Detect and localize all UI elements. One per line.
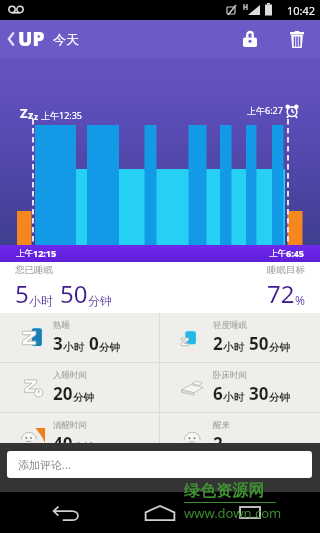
staticText: 上午12:35 [41,109,83,121]
staticText: % [295,292,305,308]
button[interactable]: UP 今天 [0,26,87,52]
staticText: 分钟 [73,391,94,404]
staticText: UP [18,26,45,52]
staticText: 上午6:27 [247,104,283,116]
staticText: 2 [213,432,223,455]
staticText: 分钟 [88,293,112,308]
staticText: 入睡时间 [53,370,87,381]
staticText: 分钟 [269,341,290,354]
button[interactable]: 卧床时间 [160,363,320,412]
staticText: 分钟 [73,441,94,454]
staticText: 分钟 [269,391,290,404]
staticText: 12:15 [33,247,57,259]
staticText: 0 [89,332,99,355]
staticText: 您已睡眠 [15,264,53,276]
button[interactable]: 醒来 [160,413,320,462]
staticText: 醒来 [213,420,230,431]
staticText: 小时 [223,391,244,404]
staticText: 50 [60,277,88,310]
staticText: 3 [53,332,63,355]
staticText: z [34,111,38,122]
staticText: 上午 [269,248,286,259]
button[interactable]: Delete [274,20,320,58]
staticText: 2 [213,332,223,355]
staticText: 6 [213,382,223,405]
staticText: 熟睡 [53,320,70,331]
staticText: 睡眠目标 [267,264,305,276]
staticText: 添加评论... [18,457,71,472]
button[interactable]: Back [44,492,88,533]
button[interactable]: 清醒时间 [0,413,159,462]
staticText: www.down.com [184,504,282,522]
staticText: 今天 [53,31,79,47]
staticText: Z [20,104,28,122]
staticText: 10:42 [287,3,316,18]
staticText: 小时 [63,341,84,354]
button[interactable]: Home [138,492,182,533]
staticText: 分钟 [99,341,120,354]
staticText: 清醒时间 [53,420,87,431]
button[interactable]: 入睡时间 [0,363,159,412]
staticText: 6:45 [286,247,304,259]
staticText: 72 [267,277,295,310]
button[interactable]: 熟睡 [0,313,159,362]
staticText: 卧床时间 [213,370,247,381]
button[interactable]: Recent apps [228,492,272,533]
staticText: 5 [15,277,29,310]
staticText: 30 [249,382,269,405]
staticText: 小时 [29,293,53,308]
staticText: 20 [53,382,73,405]
staticText: 轻度睡眠 [213,320,247,331]
staticText: 上午 [16,248,33,259]
button[interactable]: 添加评论... [7,451,312,478]
staticText: z [28,107,34,122]
staticText: 40 [53,432,73,455]
button[interactable]: Lock [226,20,274,58]
staticText: 小时 [223,341,244,354]
staticText: 50 [249,332,269,355]
button[interactable]: 轻度睡眠 [160,313,320,362]
staticText: 绿色资源网 [184,481,264,501]
